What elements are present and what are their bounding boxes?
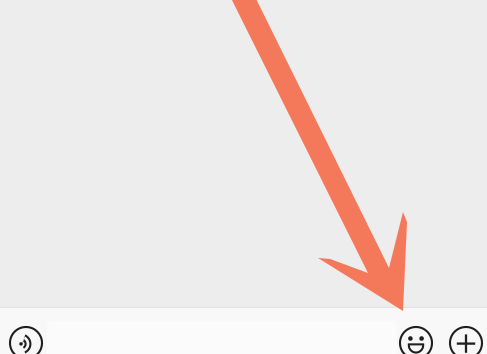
button[interactable]: Voice message bbox=[6, 323, 46, 354]
button[interactable]: More bbox=[446, 323, 486, 354]
button[interactable]: Emoji bbox=[396, 323, 436, 354]
